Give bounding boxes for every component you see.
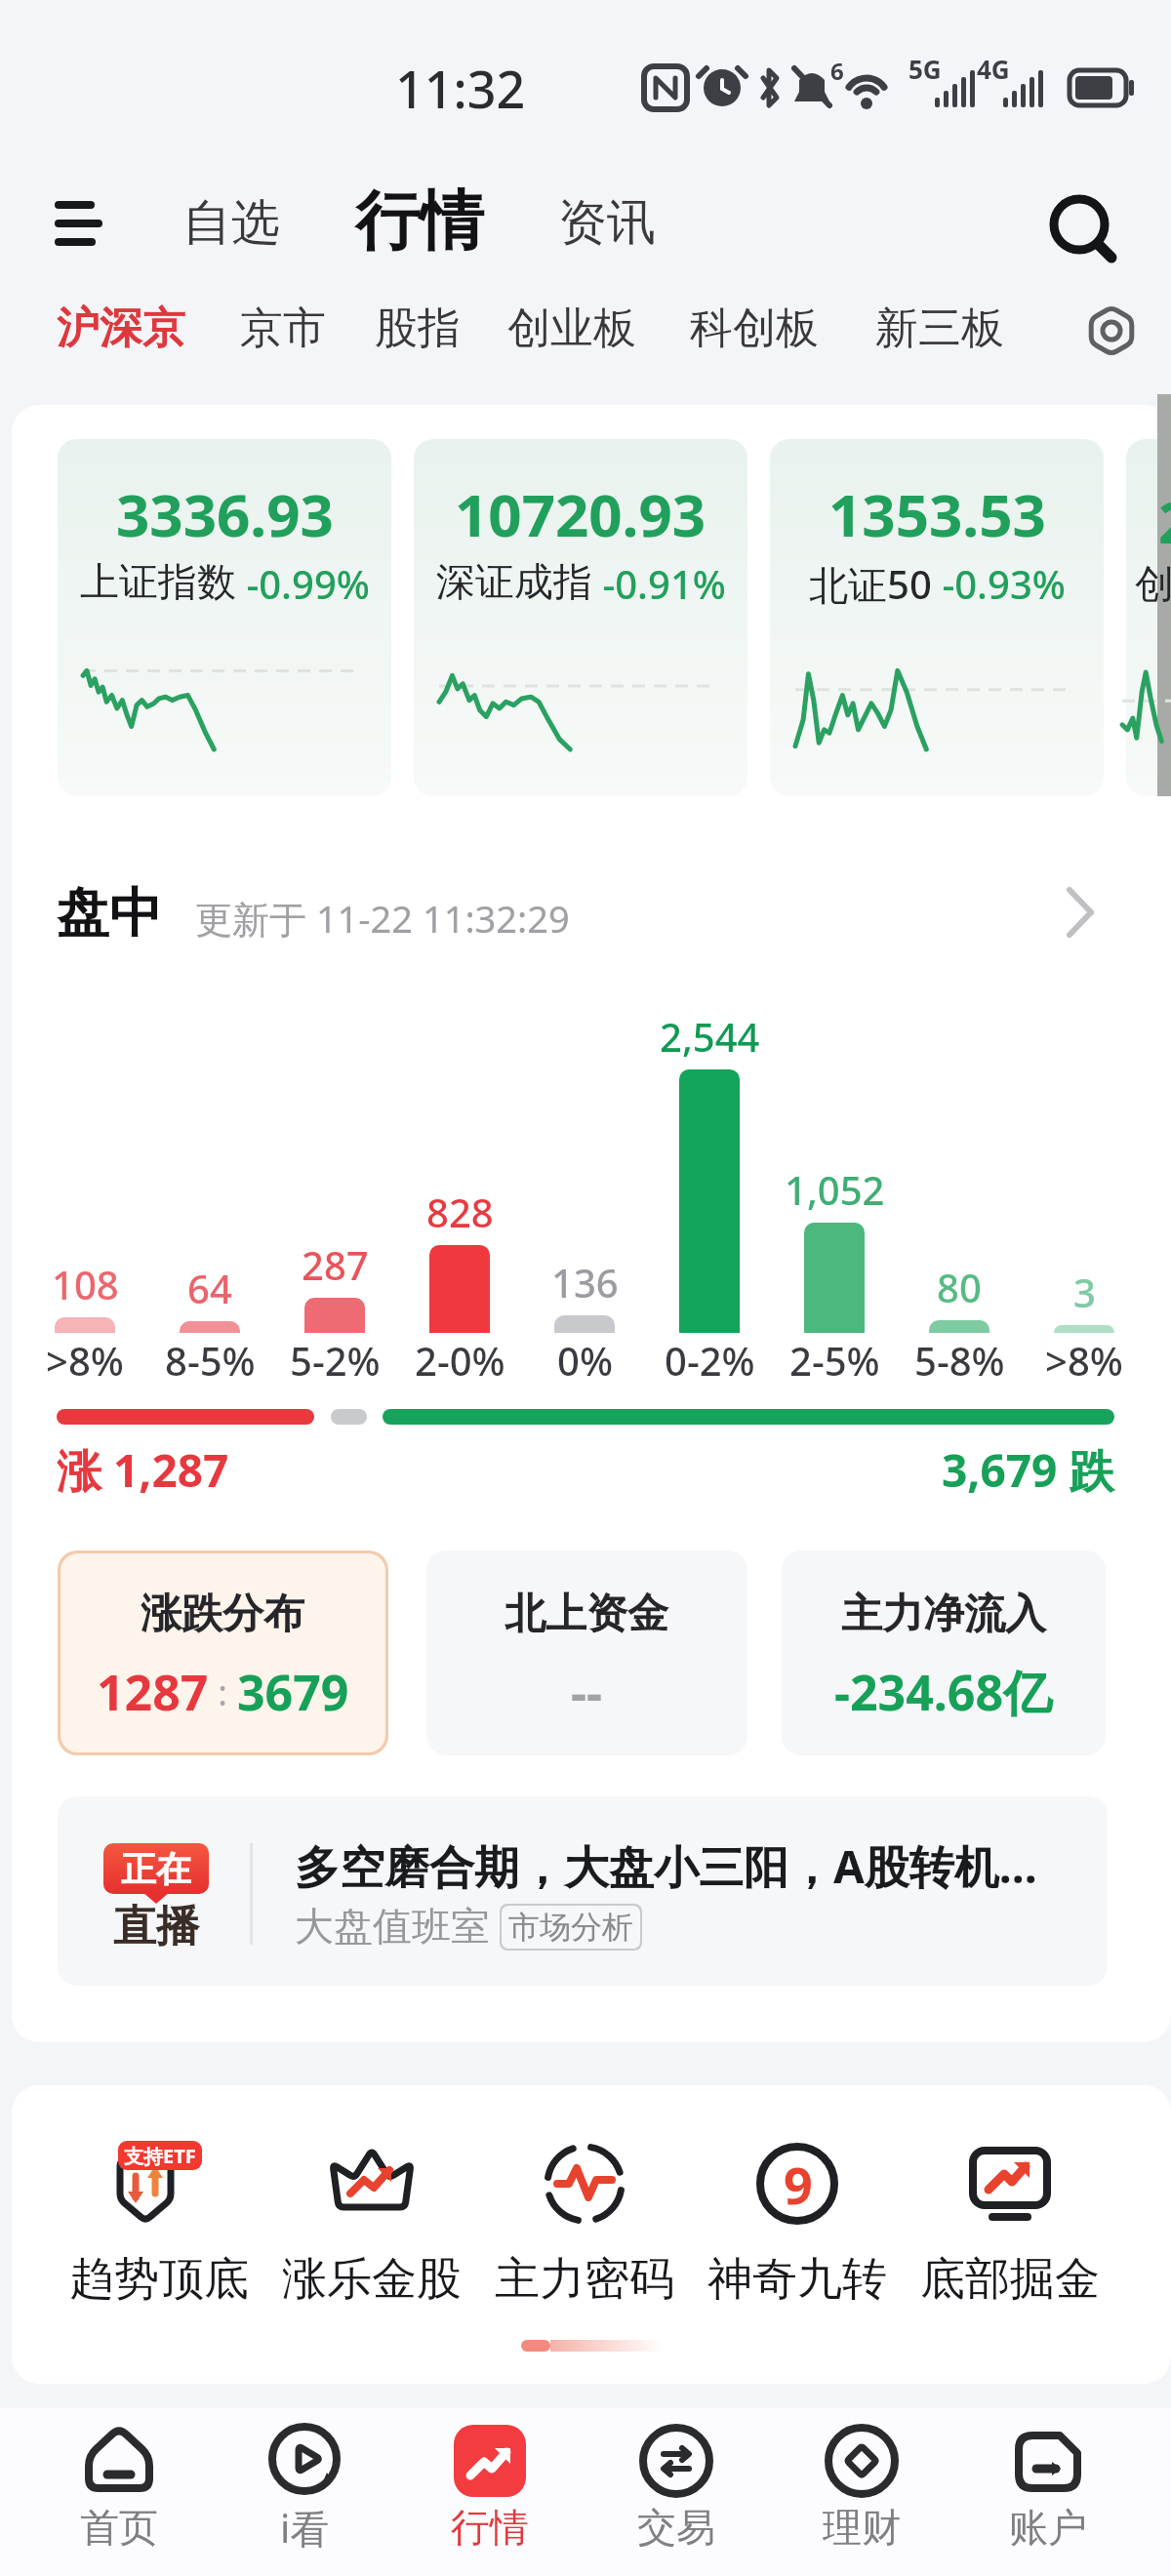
staticText: 5-2% bbox=[290, 1334, 381, 1387]
staticText: >8% bbox=[46, 1334, 124, 1387]
button[interactable] bbox=[414, 439, 747, 796]
staticText: 涨 1,287 bbox=[57, 1439, 229, 1501]
staticText: 行情 bbox=[355, 181, 484, 262]
staticText: 3336.93 bbox=[116, 474, 334, 554]
button[interactable] bbox=[1081, 301, 1142, 361]
button[interactable] bbox=[426, 1550, 747, 1755]
staticText: 287 bbox=[302, 1238, 369, 1291]
staticText: -234.68亿 bbox=[834, 1659, 1053, 1725]
staticText: 1353.53 bbox=[828, 474, 1046, 554]
staticText: 4G bbox=[977, 52, 1010, 86]
button[interactable]: 行情 bbox=[107, 177, 732, 264]
staticText: 1,052 bbox=[785, 1163, 885, 1216]
staticText: 2,544 bbox=[660, 1010, 760, 1063]
staticText: 2-0% bbox=[415, 1334, 505, 1387]
button[interactable] bbox=[784, 2412, 940, 2572]
button[interactable] bbox=[705, 2117, 890, 2313]
staticText: 资讯 bbox=[558, 192, 656, 254]
staticText: -0.99% bbox=[236, 557, 370, 610]
button[interactable] bbox=[917, 2117, 1103, 2313]
button[interactable]: 科创板 bbox=[690, 284, 819, 372]
button[interactable] bbox=[58, 1796, 1108, 1986]
staticText: 136 bbox=[551, 1256, 619, 1308]
staticText: 创业板 bbox=[507, 302, 636, 355]
staticText: 盘中 bbox=[57, 880, 162, 946]
staticText: 3 bbox=[1073, 1266, 1096, 1318]
staticText: 行情 bbox=[451, 2503, 529, 2552]
staticText: -- bbox=[571, 1659, 602, 1725]
staticText: 首页 bbox=[80, 2503, 158, 2552]
button[interactable] bbox=[66, 2117, 252, 2313]
staticText: 大盘值班室 bbox=[295, 1902, 490, 1951]
staticText: >8% bbox=[1045, 1334, 1123, 1387]
button[interactable]: 股指 bbox=[375, 284, 461, 372]
button[interactable]: 新三板 bbox=[875, 284, 1004, 372]
button[interactable]: 沪深京 bbox=[57, 284, 185, 372]
staticText: 涨乐金股 bbox=[282, 2251, 462, 2308]
staticText: 新三板 bbox=[875, 302, 1004, 355]
staticText: 108 bbox=[52, 1258, 119, 1310]
staticText: 3,679 跌 bbox=[942, 1439, 1114, 1501]
staticText: 3679 bbox=[237, 1659, 349, 1725]
button[interactable] bbox=[598, 2412, 754, 2572]
staticText: 创业板指 bbox=[1135, 559, 1171, 608]
staticText: 北上资金 bbox=[505, 1589, 668, 1640]
staticText: 股指 bbox=[375, 302, 461, 355]
staticText: 9 bbox=[784, 2150, 813, 2219]
staticText: 5G bbox=[909, 52, 942, 86]
staticText: 828 bbox=[426, 1186, 494, 1238]
button[interactable] bbox=[47, 191, 115, 256]
button[interactable] bbox=[412, 2412, 568, 2572]
staticText: 自选 bbox=[182, 192, 280, 254]
staticText: 账户 bbox=[1009, 2503, 1087, 2552]
staticText: 6 bbox=[830, 55, 844, 87]
button[interactable] bbox=[782, 1550, 1106, 1755]
staticText: 多空磨合期，大盘小三阳，A股转机... bbox=[295, 1835, 1037, 1897]
staticText: 主力净流入 bbox=[841, 1589, 1046, 1640]
button[interactable]: 自选 bbox=[0, 179, 544, 266]
staticText: 10720.93 bbox=[455, 474, 707, 554]
staticText: 趋势顶底 bbox=[69, 2251, 249, 2308]
staticText: -0.91% bbox=[592, 557, 726, 610]
staticText: : bbox=[209, 1669, 237, 1716]
staticText: 沪深京 bbox=[57, 302, 185, 355]
staticText: 京市 bbox=[240, 302, 326, 355]
staticText: 直播 bbox=[113, 1900, 199, 1953]
staticText: 神奇九转 bbox=[707, 2251, 887, 2308]
button[interactable] bbox=[1042, 187, 1124, 265]
button[interactable] bbox=[58, 439, 391, 796]
staticText: 2202.33 bbox=[1158, 481, 1171, 561]
staticText: 主力密码 bbox=[495, 2251, 674, 2308]
button[interactable] bbox=[226, 2412, 383, 2572]
button[interactable] bbox=[492, 2117, 677, 2313]
staticText: 8-5% bbox=[165, 1334, 256, 1387]
button[interactable] bbox=[58, 1550, 388, 1755]
button[interactable] bbox=[279, 2117, 464, 2313]
button[interactable] bbox=[1044, 878, 1112, 946]
button[interactable]: 京市 bbox=[240, 284, 326, 372]
staticText: 涨跌分布 bbox=[141, 1589, 304, 1640]
staticText: 底部掘金 bbox=[920, 2251, 1100, 2308]
staticText: 深证成指 bbox=[436, 557, 592, 606]
staticText: 1287 bbox=[97, 1659, 209, 1725]
staticText: 理财 bbox=[823, 2503, 901, 2552]
staticText: 0-2% bbox=[665, 1334, 755, 1387]
staticText: 2-5% bbox=[789, 1334, 880, 1387]
staticText: 64 bbox=[187, 1262, 232, 1314]
button[interactable] bbox=[41, 2412, 197, 2572]
staticText: 80 bbox=[937, 1261, 982, 1313]
button[interactable]: 创业板 bbox=[507, 284, 636, 372]
staticText: 上证指数 bbox=[80, 557, 236, 606]
staticText: 科创板 bbox=[690, 302, 819, 355]
button[interactable]: 资讯 bbox=[295, 179, 919, 266]
staticText: -0.93% bbox=[932, 557, 1066, 610]
staticText: i看 bbox=[280, 2501, 330, 2555]
button[interactable] bbox=[970, 2412, 1126, 2572]
staticText: 更新于 11-22 11:32:29 bbox=[195, 893, 570, 944]
staticText: 市场分析 bbox=[508, 1908, 633, 1947]
staticText: 正在 bbox=[121, 1847, 191, 1891]
staticText: 交易 bbox=[637, 2503, 715, 2552]
staticText: 支持ETF bbox=[124, 2143, 196, 2169]
staticText: 北证50 bbox=[809, 557, 932, 611]
button[interactable] bbox=[770, 439, 1104, 796]
